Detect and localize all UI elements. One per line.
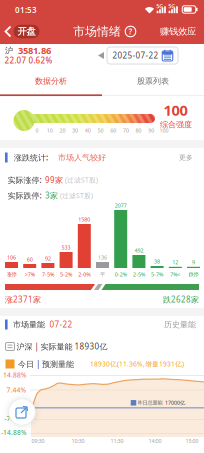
staticText: 533 [62,244,71,251]
staticText: 80 [136,127,142,134]
staticText: 开盘 [17,26,35,37]
staticText: 2-0% [78,271,90,278]
button[interactable]: 股票列表 [0,0,204,453]
staticText: 市场情绪 [73,24,121,39]
staticText: 5-7% [151,271,163,278]
staticText: 09:30 [31,437,44,445]
staticText: 50 [97,127,103,134]
button[interactable]: 数据分析 [0,0,204,453]
staticText: 17000亿 [165,399,185,406]
staticText: 涨跌统计: [14,152,48,163]
button[interactable]: Help [0,0,204,453]
staticText: 平 [100,271,105,278]
staticText: 136 [98,254,107,261]
staticText: 7.44% [6,386,26,394]
staticText: 7%< [170,271,180,278]
staticText: 18930亿(11.36%,增量1931亿) [90,360,184,368]
staticText: 92 [45,255,51,262]
staticText: 5G [156,3,163,10]
staticText: 07-22 [49,319,72,330]
staticText: 492 [134,247,143,254]
staticText: 跌停 [188,271,198,278]
staticText: 60 [110,127,116,134]
staticText: 01:53 [15,5,37,15]
staticText: 10:30 [71,437,84,445]
staticText: 20 [59,127,65,134]
staticText: 100 [159,127,168,134]
staticText: 跌2628家 [163,294,199,305]
staticText: 14.88% [3,371,27,379]
staticText: -7.44% [4,414,26,423]
staticText: 综合强度 [160,120,192,129]
staticText: 2-5% [133,271,145,278]
staticText: 历史量能 [164,320,196,329]
staticText: 昨日总量能 [137,399,162,406]
staticText: 涨停 [6,271,16,278]
button[interactable]: Pick date [0,0,204,453]
staticText: 0-2% [115,271,127,278]
staticText: 2077 [115,202,127,209]
staticText: 沪深 | 实际量能 18930亿 [16,341,107,352]
staticText: 涨2371家 [5,294,41,305]
staticText: 10 [47,127,53,134]
staticText: 12 [172,259,178,266]
staticText: >7% [25,271,35,278]
staticText: -14.88% [1,428,27,437]
button[interactable]: 开盘 [0,0,204,453]
staticText: 99家 [45,175,63,185]
staticText: (过滤ST股) [60,191,93,200]
staticText: 数据分析 [35,76,67,86]
staticText: ? [128,26,132,37]
staticText: 0 [35,127,38,134]
staticText: 3家 [45,190,58,201]
staticText: 11:30 [110,437,123,445]
staticText: 15:00 [185,437,198,445]
staticText: 14:00 [148,437,161,445]
button[interactable]: 历史量能 [0,0,204,453]
staticText: 9 [192,259,195,266]
staticText: 3581.86 [18,44,51,57]
staticText: 更多 [179,153,193,162]
button[interactable]: 赚钱效应 [0,0,204,453]
staticText: 5G [168,3,175,10]
staticText: 赚钱效应 [160,26,196,37]
staticText: 2025-07-22 [112,50,158,61]
staticText: 38 [154,258,160,265]
staticText: (过滤ST股) [65,176,98,184]
staticText: 1580 [78,216,90,223]
staticText: 今日 | 预测量能 [18,359,74,369]
button[interactable]: Back [0,0,204,453]
staticText: 40 [85,127,91,134]
staticText: 市场量能 [13,320,45,329]
staticText: 沪 [5,46,13,55]
staticText: 100 [163,100,187,120]
staticText: 90 [148,127,154,134]
staticText: 22.07 0.62% [4,55,52,66]
staticText: 30 [72,127,78,134]
staticText: 5-2% [60,271,72,278]
staticText: 106 [7,254,16,261]
staticText: 实际跌停: [7,190,41,201]
staticText: 实际涨停: [7,175,41,185]
button[interactable]: Share [8,398,35,425]
staticText: 7-5% [42,271,54,278]
button[interactable]: 更多 [0,0,204,453]
staticText: 市场人气较好 [58,153,106,162]
staticText: 60 [27,256,33,263]
staticText: 股票列表 [137,76,169,86]
staticText: 70 [123,127,129,134]
